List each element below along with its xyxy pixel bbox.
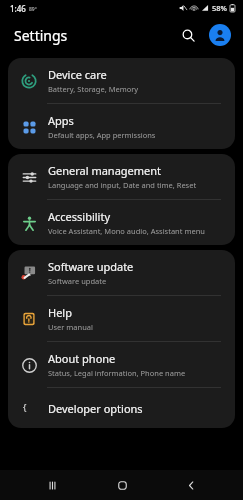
staticText: Device care [48, 67, 107, 82]
staticText: Voice Assistant, Mono audio, Assistant m… [48, 226, 205, 236]
button[interactable]: { } [8, 388, 235, 428]
staticText: 89° [29, 6, 37, 13]
button[interactable]: Search [177, 24, 199, 46]
staticText: Accessibility [48, 209, 111, 224]
button[interactable]: Software update [8, 250, 235, 295]
button[interactable]: Home [105, 470, 139, 500]
staticText: Apps [48, 113, 74, 128]
staticText: User manual [48, 322, 93, 332]
staticText: General management [48, 163, 162, 178]
button[interactable]: Recent apps [35, 470, 69, 500]
button[interactable]: Device care [8, 58, 235, 103]
staticText: 58% [212, 3, 227, 13]
staticText: Battery, Storage, Memory [48, 84, 139, 94]
staticText: 1:46 [10, 3, 26, 14]
staticText: About phone [48, 351, 116, 366]
staticText: Default apps, App permissions [48, 130, 156, 140]
button[interactable]: About phone [8, 342, 235, 387]
staticText: { } [22, 401, 37, 416]
staticText: Software update [48, 259, 134, 274]
button[interactable]: Account [209, 24, 231, 46]
button[interactable]: Apps [8, 104, 235, 149]
staticText: Settings [14, 26, 68, 45]
staticText: Software update [48, 276, 107, 286]
button[interactable]: General management [8, 154, 235, 199]
staticText: Status, Legal information, Phone name [48, 368, 186, 378]
staticText: Language and input, Date and time, Reset [48, 180, 197, 190]
button[interactable]: Back [174, 470, 208, 500]
button[interactable]: Help [8, 296, 235, 341]
button[interactable]: Accessibility [8, 200, 235, 245]
staticText: Help [48, 305, 72, 320]
staticText: Developer options [48, 401, 143, 416]
